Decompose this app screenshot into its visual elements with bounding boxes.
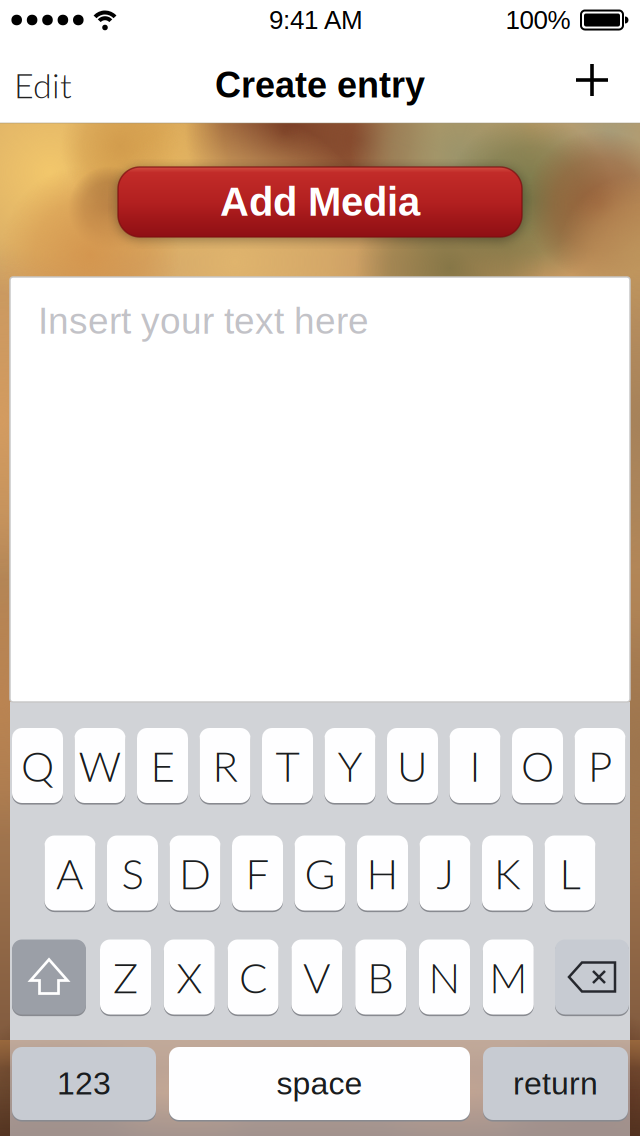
button[interactable]: Delete [555, 939, 629, 1014]
button[interactable]: K [482, 835, 533, 910]
staticText: X [176, 952, 202, 1002]
staticText: G [304, 848, 335, 898]
button[interactable]: W [74, 728, 125, 803]
staticText: return [513, 1066, 598, 1101]
staticText: H [366, 848, 398, 898]
staticText: E [150, 740, 174, 791]
staticText: O [521, 740, 554, 791]
button[interactable]: Y [324, 728, 375, 803]
staticText: R [212, 740, 237, 791]
button[interactable]: D [169, 835, 220, 910]
button[interactable]: F [232, 835, 283, 910]
button[interactable]: C [228, 939, 279, 1014]
staticText: T [275, 740, 299, 791]
staticText: S [121, 848, 143, 898]
button[interactable]: L [544, 835, 595, 910]
button[interactable]: space [169, 1047, 470, 1120]
staticText: 123 [57, 1066, 111, 1101]
button[interactable]: N [419, 939, 470, 1014]
button[interactable]: Q [12, 728, 63, 803]
staticText: B [367, 952, 394, 1002]
staticText: P [588, 740, 612, 791]
staticText: M [489, 952, 527, 1002]
button[interactable]: Shift [12, 939, 86, 1014]
staticText: J [436, 848, 453, 898]
staticText: Y [337, 740, 362, 791]
button[interactable]: return [483, 1047, 628, 1120]
button[interactable]: Z [100, 939, 151, 1014]
staticText: V [303, 952, 331, 1002]
staticText: F [245, 848, 269, 898]
staticText: Z [113, 952, 138, 1002]
staticText: Edit [14, 65, 72, 105]
button[interactable]: B [355, 939, 406, 1014]
staticText: W [78, 740, 121, 791]
staticText: Q [21, 740, 54, 791]
button[interactable]: Add Media [118, 167, 522, 237]
staticText: U [397, 740, 428, 791]
button[interactable]: Edit [14, 65, 72, 105]
staticText: D [179, 848, 211, 898]
button[interactable]: A [44, 835, 95, 910]
button[interactable]: U [387, 728, 438, 803]
staticText: 100% [505, 5, 570, 34]
button[interactable]: 123 [12, 1047, 156, 1120]
button[interactable]: H [357, 835, 408, 910]
button[interactable]: P [574, 728, 625, 803]
staticText: N [428, 952, 460, 1002]
button[interactable]: X [164, 939, 215, 1014]
button[interactable]: T [262, 728, 313, 803]
staticText: L [559, 848, 580, 898]
button[interactable]: J [419, 835, 470, 910]
button[interactable]: G [294, 835, 345, 910]
button[interactable]: Add [570, 58, 614, 102]
staticText: A [56, 848, 84, 898]
staticText: Add Media [220, 180, 420, 224]
button[interactable]: M [483, 939, 534, 1014]
button[interactable]: S [107, 835, 158, 910]
staticText: I [469, 740, 480, 791]
button[interactable]: I [449, 728, 500, 803]
staticText: C [239, 952, 267, 1002]
button[interactable]: R [199, 728, 250, 803]
button[interactable]: E [137, 728, 188, 803]
button[interactable]: O [512, 728, 563, 803]
button[interactable]: V [291, 939, 342, 1014]
staticText: K [494, 848, 521, 898]
staticText: 9:41 AM [269, 5, 363, 34]
staticText: Create entry [215, 65, 425, 105]
staticText: space [276, 1066, 362, 1101]
staticText: Insert your text here [38, 300, 369, 342]
